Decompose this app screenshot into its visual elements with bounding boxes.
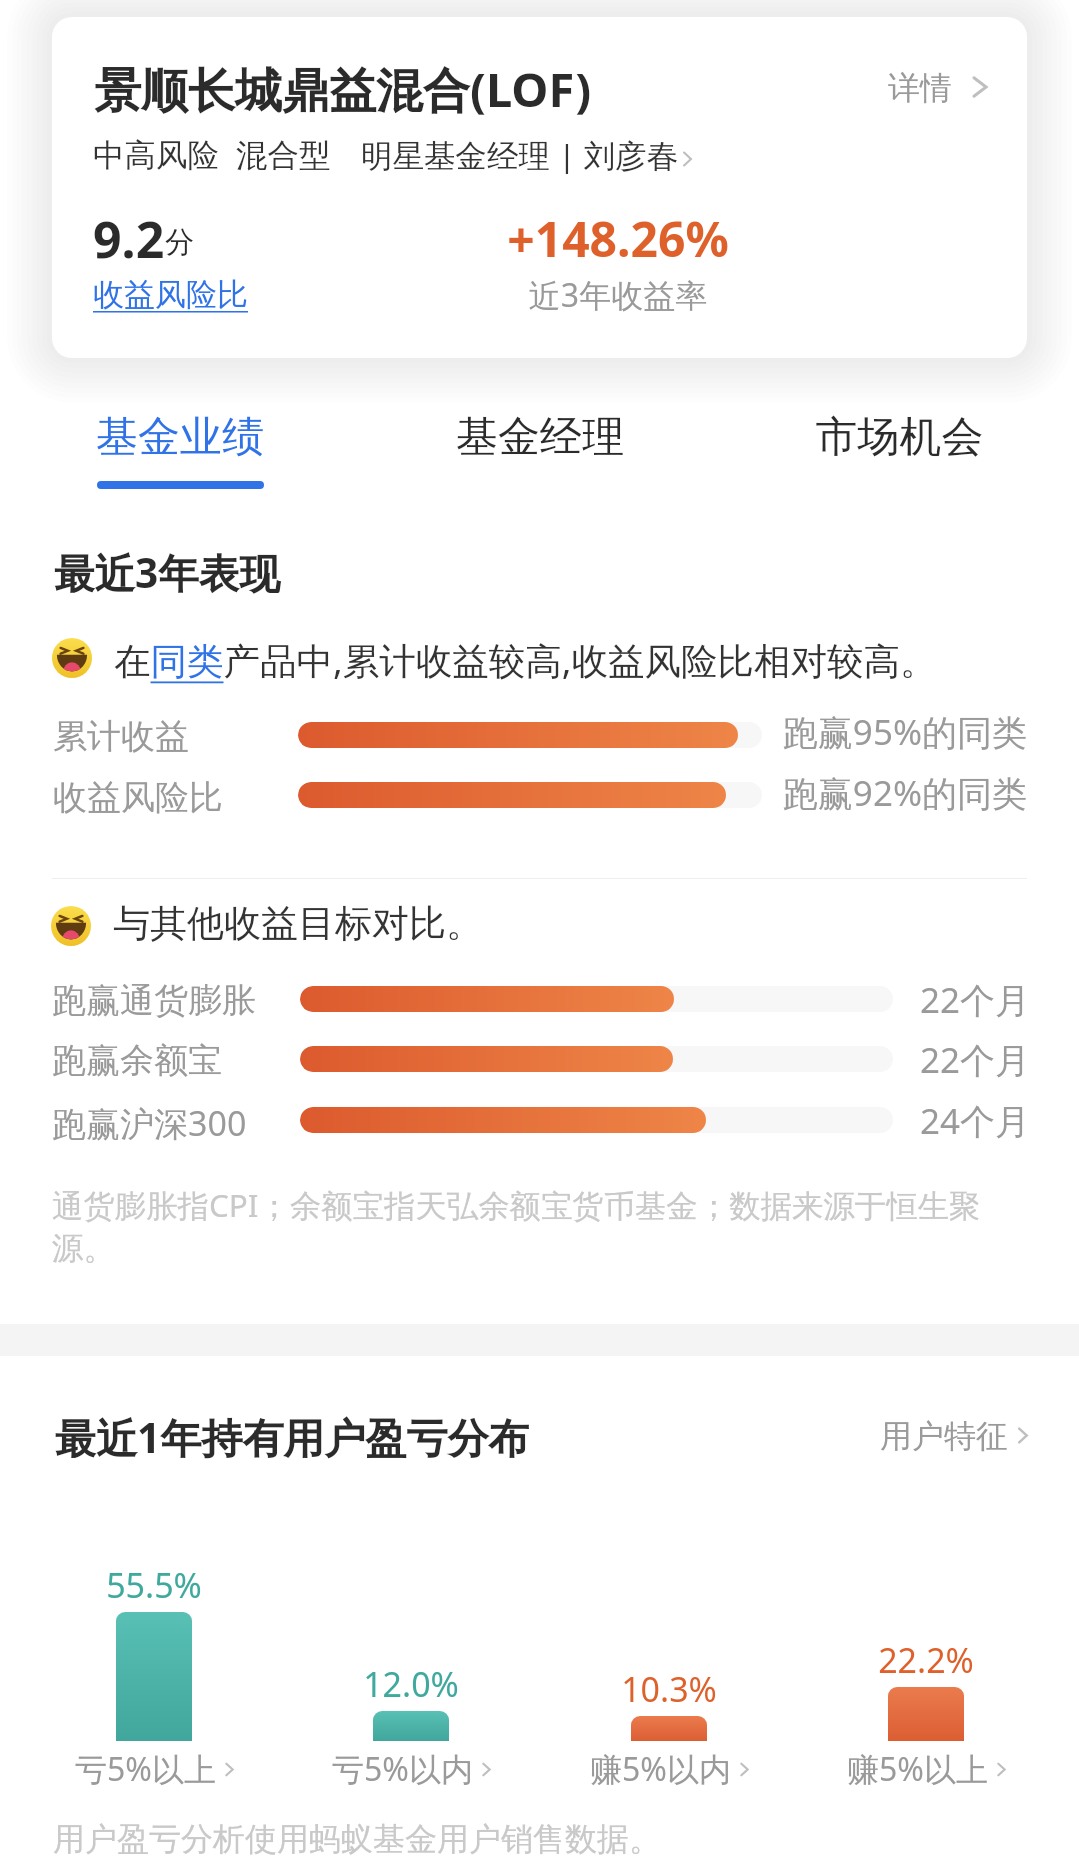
- staticText: 明星基金经理 | 刘彦春: [361, 133, 679, 176]
- staticText: 9.2: [93, 205, 165, 273]
- staticText: 收益风险比: [53, 776, 223, 819]
- other: 详情: [972, 77, 988, 97]
- staticText: 与其他收益目标对比。: [113, 900, 483, 947]
- staticText: 中高风险: [93, 136, 219, 176]
- staticText: 混合型: [236, 136, 331, 176]
- other: 用户特征: [1018, 1428, 1028, 1443]
- staticText: 跑赢95%的同类: [727, 708, 1027, 756]
- staticText: 跑赢沪深300: [52, 1100, 247, 1146]
- staticText: 基金业绩: [0, 411, 360, 464]
- staticText: 用户特征: [880, 1416, 1008, 1456]
- button[interactable]: 市场机会: [720, 400, 1079, 500]
- button[interactable]: 亏5%以内: [291, 1740, 531, 1792]
- staticText: 近3年收益率: [418, 273, 818, 317]
- staticText: 22个月: [830, 976, 1030, 1024]
- button[interactable]: 用户特征: [870, 1410, 1034, 1458]
- staticText: 12.0%: [291, 1661, 531, 1707]
- staticText: 最近1年持有用户盈亏分布: [55, 1409, 530, 1465]
- button[interactable]: 明星基金经理 | 刘彦春: [355, 128, 703, 180]
- staticText: 通货膨胀指CPI；余额宝指天弘余额宝货币基金；数据来源于恒生聚源。: [52, 1183, 1004, 1268]
- staticText: 详情: [888, 68, 952, 108]
- staticText: 基金经理: [360, 411, 720, 464]
- staticText: 亏5%以上: [75, 1747, 216, 1791]
- staticText: 跑赢通货膨胀: [52, 979, 256, 1022]
- staticText: 赚5%以上: [847, 1747, 988, 1791]
- staticText: +148.26%: [418, 206, 818, 271]
- button[interactable]: 赚5%以上: [806, 1740, 1046, 1792]
- staticText: 跑赢余额宝: [52, 1039, 222, 1082]
- staticText: 在同类产品中,累计收益较高,收益风险比相对较高。: [114, 635, 937, 685]
- staticText: 亏5%以内: [332, 1747, 473, 1791]
- button[interactable]: 详情: [876, 60, 1028, 110]
- staticText: 最近3年表现: [54, 545, 280, 600]
- staticText: 24个月: [830, 1097, 1030, 1145]
- button[interactable]: [52, 17, 1027, 358]
- staticText: 累计收益: [53, 715, 189, 758]
- staticText: 市场机会: [720, 411, 1079, 464]
- staticText: 跑赢92%的同类: [727, 769, 1027, 817]
- button[interactable]: 赚5%以内: [549, 1740, 789, 1792]
- staticText: 分: [165, 224, 194, 261]
- other: 基金经理: [683, 152, 692, 166]
- staticText: 收益风险比: [93, 275, 248, 314]
- staticText: 22.2%: [806, 1637, 1046, 1683]
- staticText: 用户盈亏分析使用蚂蚁基金用户销售数据。: [53, 1819, 661, 1859]
- button[interactable]: 基金经理: [360, 400, 720, 500]
- button[interactable]: 亏5%以上: [34, 1740, 274, 1792]
- staticText: 22个月: [830, 1036, 1030, 1084]
- staticText: 10.3%: [549, 1666, 789, 1712]
- button[interactable]: 收益风险比: [88, 272, 260, 318]
- staticText: 55.5%: [34, 1562, 274, 1608]
- button[interactable]: 基金业绩: [0, 400, 360, 500]
- staticText: 赚5%以内: [590, 1747, 731, 1791]
- staticText: 景顺长城鼎益混合(LOF): [94, 57, 592, 121]
